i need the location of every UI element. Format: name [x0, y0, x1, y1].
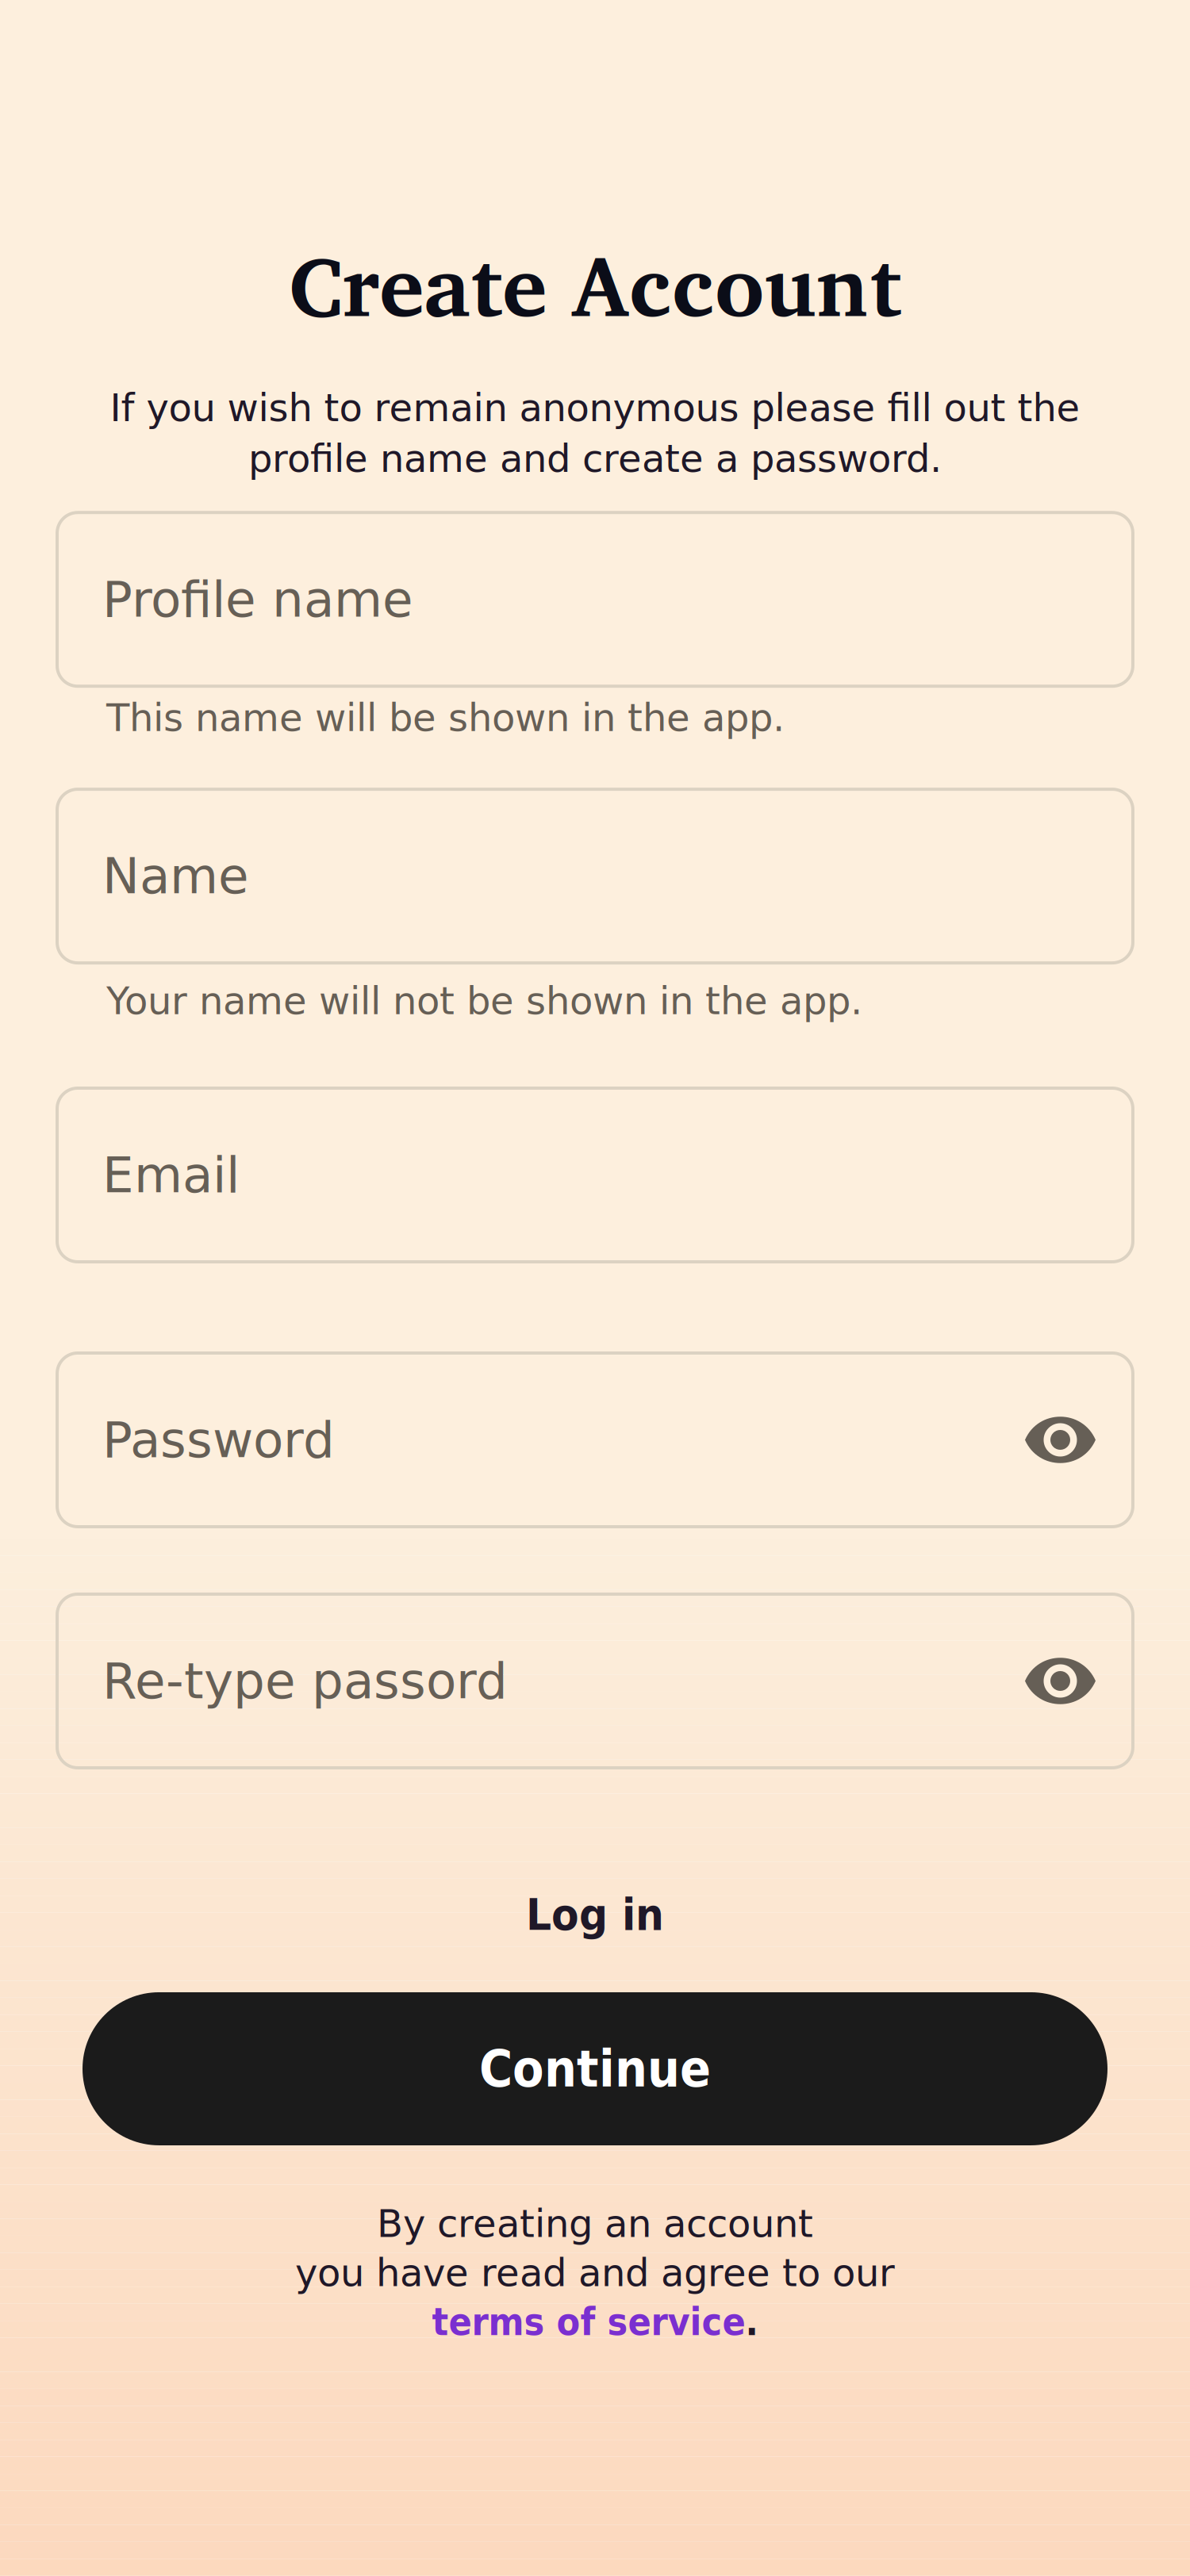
- staticText: This name will be shown in the app.: [106, 696, 785, 740]
- staticText: terms of service: [432, 2300, 745, 2344]
- staticText: Continue: [479, 2039, 711, 2098]
- staticText: Profile name: [102, 570, 413, 628]
- button[interactable]: terms of service: [432, 2300, 758, 2344]
- staticText: profile name and create a password.: [248, 437, 942, 481]
- staticText: Email: [102, 1146, 240, 1204]
- staticText: Name: [102, 847, 249, 905]
- staticText: Re-type passord: [102, 1652, 508, 1710]
- staticText: By creating an account: [377, 2202, 813, 2246]
- staticText: .: [745, 2300, 758, 2344]
- staticText: If you wish to remain anonymous please f…: [110, 386, 1080, 430]
- button[interactable]: Profile name: [57, 513, 1133, 686]
- button[interactable]: Email: [57, 1088, 1133, 1262]
- button[interactable]: Continue: [83, 1992, 1107, 2145]
- button[interactable]: Re-type passord: [57, 1594, 1133, 1768]
- staticText: Your name will not be shown in the app.: [106, 979, 862, 1023]
- button[interactable]: Log in: [468, 1888, 722, 1941]
- staticText: you have read and agree to our: [295, 2251, 895, 2295]
- button[interactable]: Name: [57, 789, 1133, 963]
- button[interactable]: Password: [57, 1353, 1133, 1527]
- staticText: Create Account: [289, 215, 901, 353]
- staticText: Log in: [526, 1889, 664, 1940]
- staticText: Password: [102, 1411, 335, 1469]
